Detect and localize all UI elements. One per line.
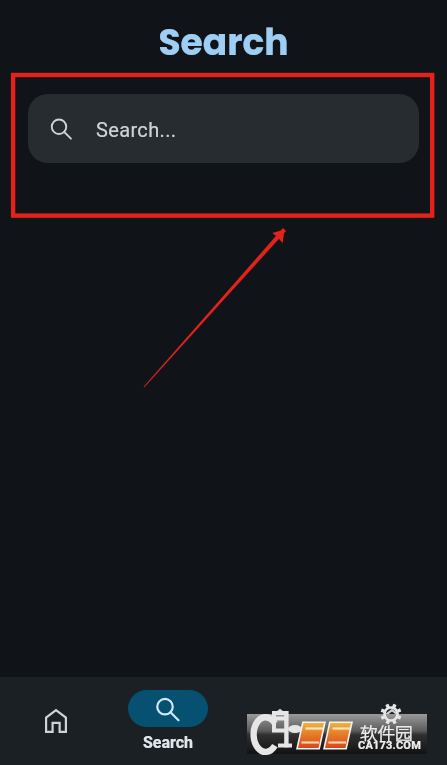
button[interactable]: Home <box>0 677 112 765</box>
staticText: 软件园 <box>360 720 413 745</box>
staticText: CA173.COM <box>358 739 421 752</box>
button[interactable]: Search <box>112 677 224 765</box>
button[interactable]: Search... <box>28 94 419 163</box>
staticText: Search <box>143 733 194 752</box>
staticText: Search <box>158 17 289 67</box>
button[interactable]: Library <box>224 677 336 765</box>
staticText: Search... <box>96 118 177 141</box>
button[interactable]: Profile <box>336 677 447 765</box>
